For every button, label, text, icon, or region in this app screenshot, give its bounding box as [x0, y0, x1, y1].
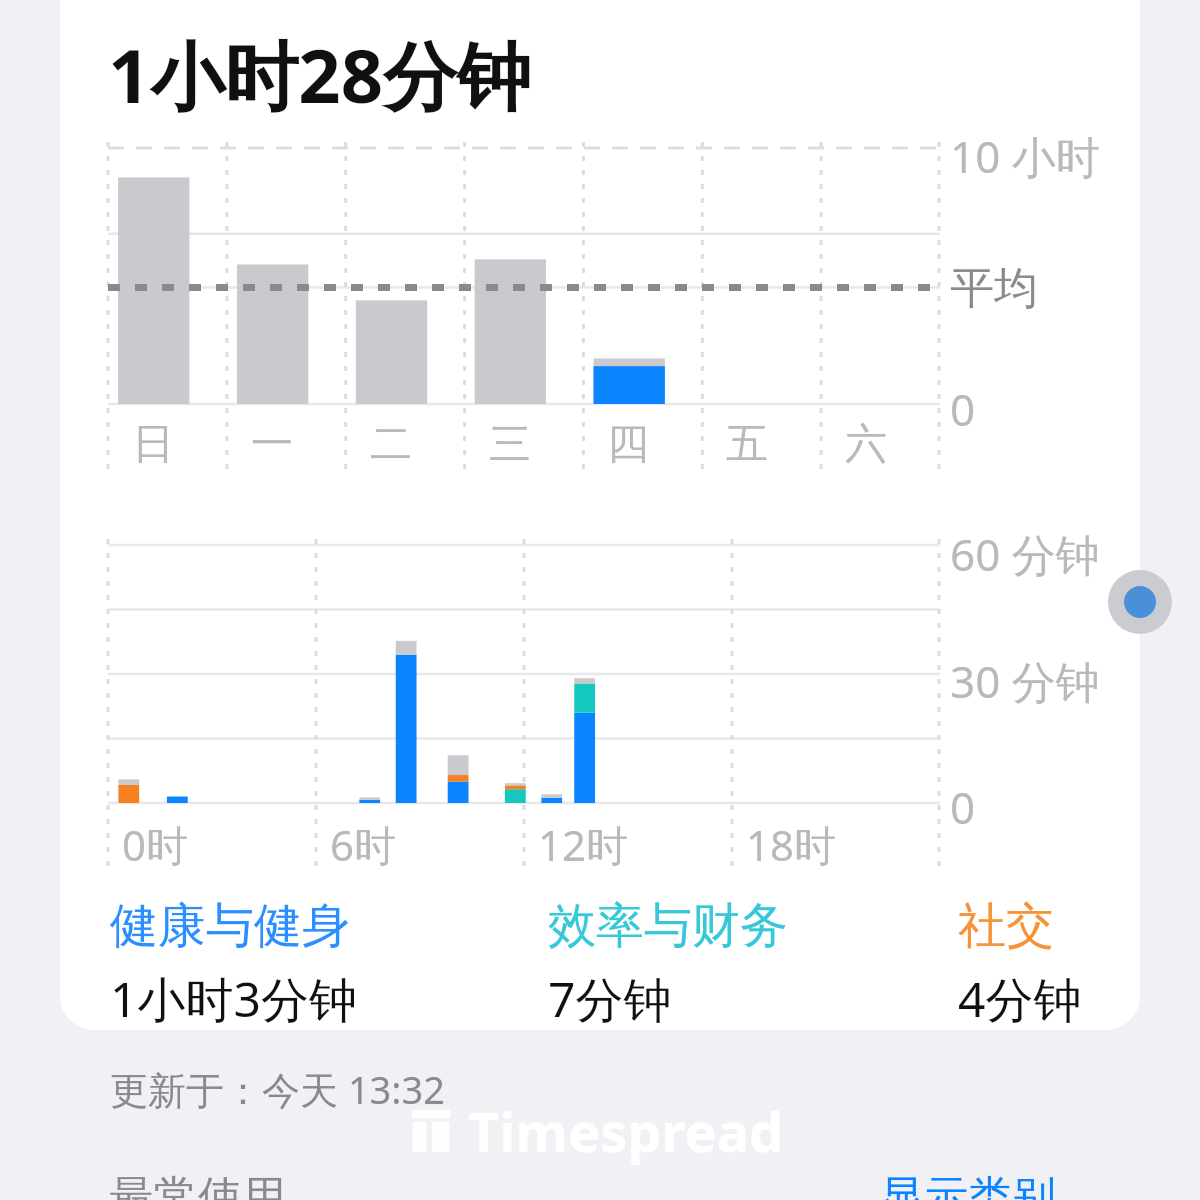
- staticText: 四: [607, 418, 649, 471]
- staticText: 30 分钟: [950, 651, 1100, 711]
- staticText: 0: [950, 777, 976, 837]
- button[interactable]: 社交: [958, 896, 1082, 1032]
- button[interactable]: 效率与财务: [548, 896, 788, 1032]
- staticText: 7分钟: [548, 966, 672, 1032]
- staticText: 平均: [950, 261, 1038, 316]
- staticText: 12时: [538, 816, 629, 873]
- staticText: 六: [845, 418, 887, 471]
- staticText: 6时: [330, 816, 397, 873]
- staticText: 二: [370, 418, 412, 471]
- button[interactable]: 健康与健身: [110, 896, 357, 1032]
- staticText: 日: [132, 418, 174, 471]
- staticText: 五: [726, 418, 768, 471]
- staticText: 0时: [122, 816, 189, 873]
- staticText: 最常使用: [110, 1170, 286, 1200]
- staticText: 三: [489, 418, 531, 471]
- staticText: Timespread: [468, 1094, 784, 1168]
- button[interactable]: 显示类别: [880, 1170, 1056, 1200]
- staticText: 1小时28分钟: [108, 24, 531, 125]
- staticText: 1小时3分钟: [110, 966, 357, 1032]
- staticText: 0: [950, 379, 976, 439]
- staticText: 更新于：今天 13:32: [110, 1063, 446, 1115]
- staticText: 一: [251, 418, 293, 471]
- staticText: 社交: [958, 896, 1054, 956]
- staticText: 效率与财务: [548, 896, 788, 956]
- staticText: 显示类别: [880, 1170, 1056, 1200]
- button[interactable]: [60, 0, 1140, 1030]
- staticText: 4分钟: [958, 966, 1082, 1032]
- button[interactable]: Page indicator: [1108, 570, 1172, 634]
- staticText: 18时: [746, 816, 837, 873]
- staticText: 健康与健身: [110, 896, 350, 956]
- staticText: 60 分钟: [950, 524, 1100, 584]
- staticText: 10 小时: [950, 126, 1100, 186]
